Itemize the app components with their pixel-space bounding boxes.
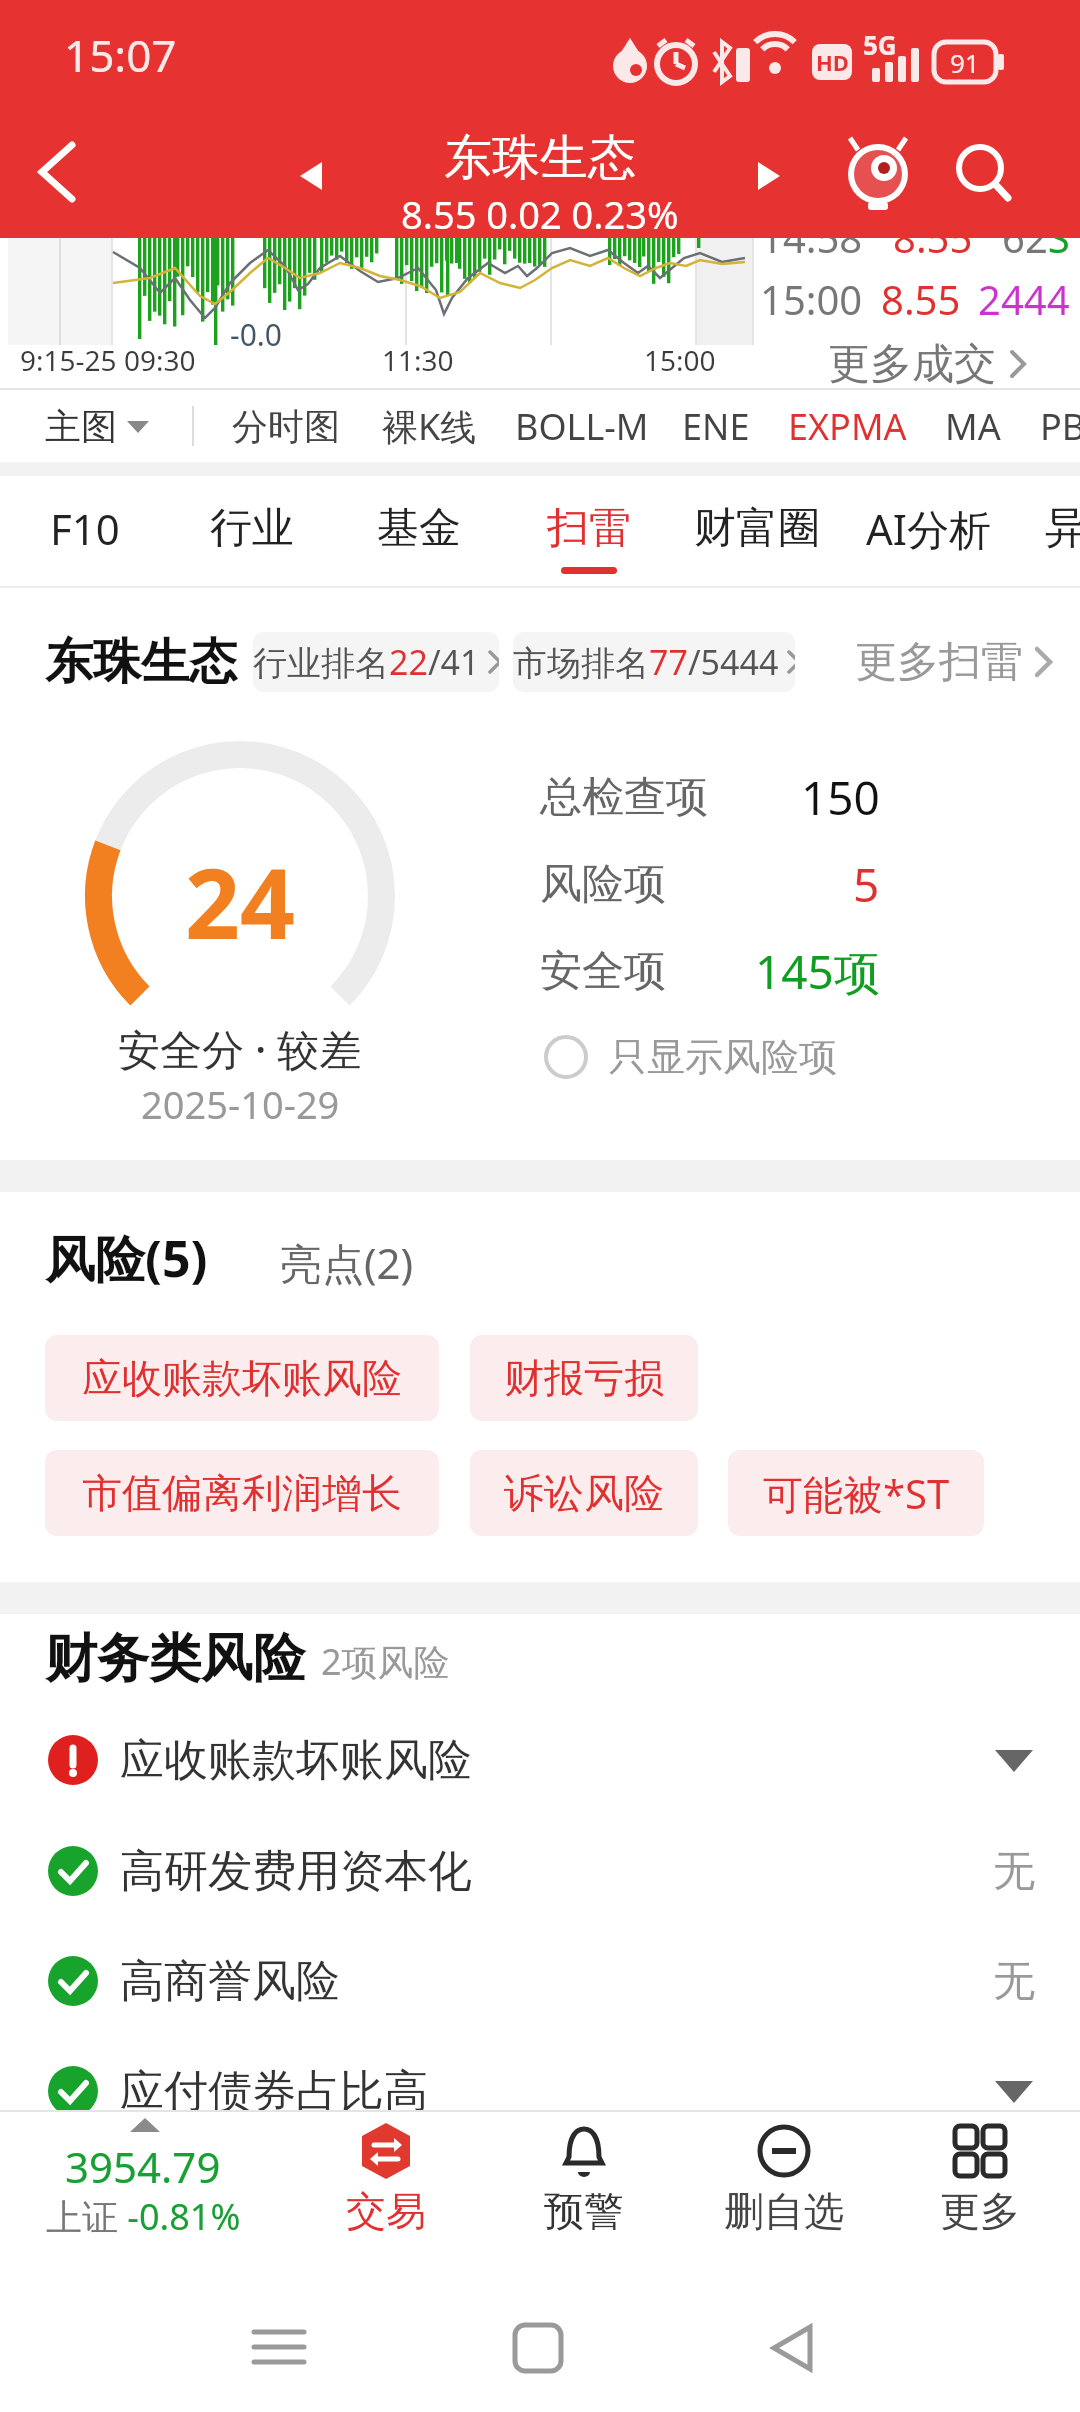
staticText: 行业 xyxy=(210,502,294,555)
button[interactable]: 裸K线 xyxy=(382,390,477,462)
staticText: 财报亏损 xyxy=(504,1353,664,1403)
staticText: 8.55 xyxy=(881,272,961,326)
staticText: 删自选 xyxy=(724,2186,844,2236)
staticText: 145项 xyxy=(755,940,880,1003)
staticText: 09:30 xyxy=(124,341,196,379)
button[interactable]: 删自选 xyxy=(704,2110,864,2260)
staticText: 8.55 xyxy=(893,238,973,264)
button[interactable]: 市值偏离利润增长 xyxy=(45,1450,439,1536)
button[interactable]: AI分析 xyxy=(849,478,1009,578)
staticText: MA xyxy=(945,402,1001,451)
staticText: 2444 xyxy=(978,272,1070,326)
button[interactable]: 3954.79 xyxy=(30,2110,256,2260)
staticText: 62S xyxy=(1002,238,1070,264)
button[interactable]: 更多扫雷 xyxy=(855,636,1053,689)
staticText: 15:00 xyxy=(644,341,716,379)
staticText: 分时图 xyxy=(232,404,340,449)
staticText: 只显示风险项 xyxy=(609,1033,837,1081)
staticText: 预警 xyxy=(544,2186,624,2236)
staticText: 8.55 0.02 0.23% xyxy=(401,188,679,232)
button[interactable]: MA xyxy=(945,390,1001,462)
button[interactable]: 主图 xyxy=(45,390,149,462)
staticText: 可能被*ST xyxy=(763,1466,950,1521)
button[interactable]: 应收账款坏账风险 xyxy=(0,1705,1080,1815)
staticText: 交易 xyxy=(346,2186,426,2236)
staticText: 150 xyxy=(801,766,880,829)
staticText: AI分析 xyxy=(866,500,992,557)
staticText: 财务类风险 xyxy=(45,1626,305,1692)
button[interactable]: 只显示风险项 xyxy=(543,1033,837,1081)
staticText: 无 xyxy=(993,1845,1035,1898)
button[interactable]: 可能被*ST xyxy=(728,1450,984,1536)
staticText: 东珠生态 xyxy=(45,632,237,692)
staticText: ENE xyxy=(682,402,750,451)
staticText: 15:00 xyxy=(760,272,863,326)
staticText: 3954.79 xyxy=(65,2138,221,2190)
staticText: 亮点(2) xyxy=(280,1234,414,1291)
button[interactable]: PB xyxy=(1040,390,1080,462)
staticText: 风险项 xyxy=(540,858,666,911)
staticText: 5G xyxy=(863,27,897,62)
staticText: 2项风险 xyxy=(321,1637,450,1686)
staticText: 2025-10-29 xyxy=(141,1078,340,1130)
staticText: 应收账款坏账风险 xyxy=(120,1733,472,1788)
staticText: F10 xyxy=(50,500,120,557)
staticText: 24 xyxy=(185,836,295,956)
staticText: 财富圈 xyxy=(694,502,820,555)
button[interactable]: BOLL-M xyxy=(515,390,649,462)
button[interactable]: EXPMA xyxy=(788,390,907,462)
button[interactable]: 行业 xyxy=(172,478,332,578)
staticText: 9:15-25 xyxy=(20,341,117,379)
button[interactable]: 诉讼风险 xyxy=(470,1450,698,1536)
button[interactable]: 应收账款坏账风险 xyxy=(45,1335,439,1421)
button[interactable]: 异 xyxy=(986,478,1080,578)
staticText: 安全分 · 较差 xyxy=(118,1020,362,1077)
staticText: 高商誉风险 xyxy=(120,1954,340,2009)
staticText: 15:07 xyxy=(64,25,177,85)
button[interactable]: 交易 xyxy=(306,2110,466,2260)
button[interactable]: 分时图 xyxy=(232,390,340,462)
staticText: 91 xyxy=(950,45,980,80)
button[interactable]: 市场排名77/5444 xyxy=(513,632,795,692)
staticText: 诉讼风险 xyxy=(504,1468,664,1518)
staticText: 无 xyxy=(993,1955,1035,2008)
button[interactable]: 高商誉风险 xyxy=(0,1926,1080,2036)
staticText: BOLL-M xyxy=(515,402,649,451)
button[interactable] xyxy=(0,110,1080,238)
staticText: 主图 xyxy=(45,404,117,449)
staticText: 高研发费用资本化 xyxy=(120,1844,472,1899)
button[interactable]: 扫雷 xyxy=(509,478,669,578)
staticText: 总检查项 xyxy=(540,771,708,824)
button[interactable]: F10 xyxy=(5,478,165,578)
staticText: 应收账款坏账风险 xyxy=(82,1353,402,1403)
button[interactable]: 高研发费用资本化 xyxy=(0,1816,1080,1926)
staticText: -0.0 xyxy=(230,314,283,355)
staticText: 裸K线 xyxy=(382,402,477,451)
button[interactable]: 行业排名22/41 xyxy=(253,632,499,692)
button[interactable]: 财报亏损 xyxy=(470,1335,698,1421)
staticText: 更多 xyxy=(940,2186,1020,2236)
staticText: PB xyxy=(1040,402,1080,451)
staticText: 市场排名77/5444 xyxy=(513,639,779,685)
staticText: 异 xyxy=(1045,502,1080,555)
button[interactable]: 预警 xyxy=(504,2110,664,2260)
button[interactable]: 更多 xyxy=(900,2110,1060,2260)
staticText: 更多扫雷 xyxy=(855,636,1023,689)
staticText: 安全项 xyxy=(540,945,666,998)
staticText: 风险(5) xyxy=(45,1224,208,1292)
staticText: 基金 xyxy=(377,502,461,555)
staticText: 东珠生态 xyxy=(444,128,636,188)
button[interactable]: 财富圈 xyxy=(677,478,837,578)
button[interactable]: 应付债券占比高 xyxy=(0,2036,1080,2146)
button[interactable]: 基金 xyxy=(339,478,499,578)
staticText: 扫雷 xyxy=(547,502,631,555)
button[interactable]: 更多成交 xyxy=(828,338,1028,390)
staticText: 5 xyxy=(853,853,880,916)
button[interactable]: ENE xyxy=(682,390,750,462)
staticText: HD xyxy=(816,47,849,77)
staticText: 市值偏离利润增长 xyxy=(82,1468,402,1518)
staticText: 应付债券占比高 xyxy=(120,2064,428,2119)
staticText: 14:58 xyxy=(760,238,863,264)
staticText: 行业排名22/41 xyxy=(253,639,480,685)
staticText: 11:30 xyxy=(382,341,454,379)
